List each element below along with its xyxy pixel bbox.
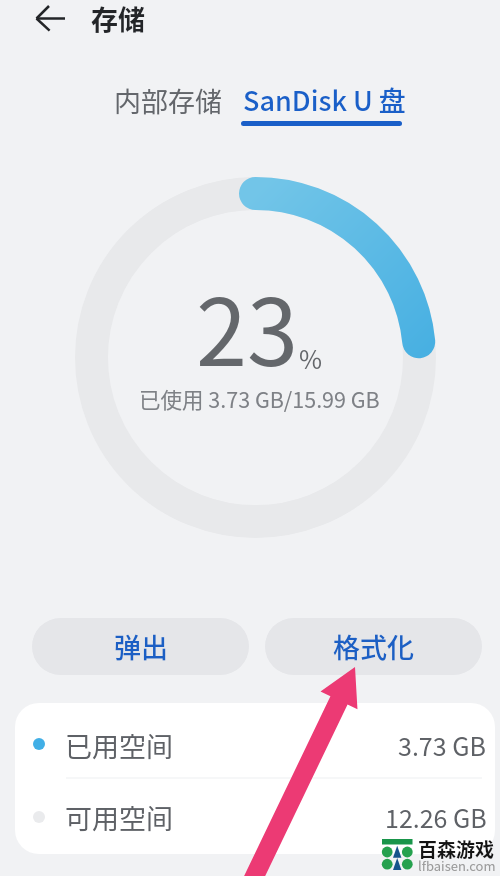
- button[interactable]: Back: [17, 0, 65, 39]
- staticText: 格式化: [333, 627, 414, 666]
- button[interactable]: [15, 778, 495, 854]
- button[interactable]: 弹出: [32, 618, 249, 675]
- staticText: %: [299, 340, 323, 376]
- staticText: 已使用 3.73 GB/15.99 GB: [139, 383, 380, 414]
- staticText: lfbaisen.com: [418, 856, 496, 875]
- staticText: 可用空间: [65, 798, 173, 837]
- staticText: 3.73 GB: [398, 727, 486, 763]
- staticText: 23: [196, 259, 299, 392]
- staticText: 已用空间: [65, 726, 173, 765]
- staticText: 存储: [91, 0, 145, 38]
- button[interactable]: [15, 703, 495, 777]
- staticText: 内部存储: [114, 81, 222, 120]
- button[interactable]: SanDisk U 盘: [235, 76, 414, 123]
- button[interactable]: 内部存储: [106, 77, 230, 124]
- button[interactable]: 格式化: [265, 618, 482, 675]
- staticText: 12.26 GB: [385, 799, 487, 835]
- staticText: 百森游戏: [418, 835, 495, 863]
- staticText: SanDisk U 盘: [243, 80, 406, 119]
- staticText: 弹出: [114, 627, 168, 666]
